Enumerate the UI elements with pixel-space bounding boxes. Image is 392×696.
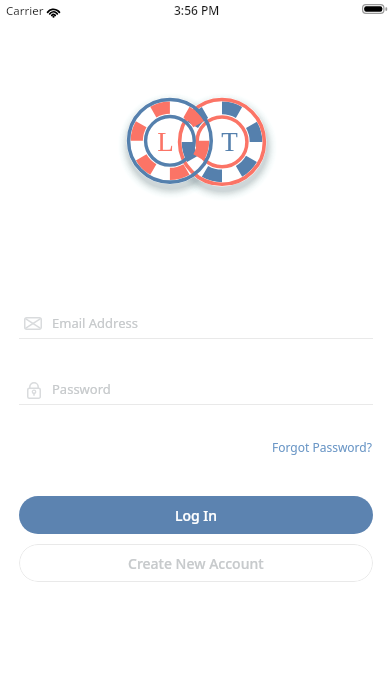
staticText: Carrier bbox=[6, 3, 44, 19]
button[interactable]: Create New Account bbox=[19, 544, 373, 582]
button[interactable]: Forgot Password? bbox=[264, 433, 380, 461]
staticText: Password bbox=[52, 380, 111, 398]
staticText: 3:56 PM bbox=[174, 2, 220, 18]
staticText: T bbox=[221, 127, 238, 157]
staticText: Forgot Password? bbox=[272, 439, 372, 455]
staticText: L bbox=[157, 127, 174, 157]
staticText: Create New Account bbox=[128, 554, 264, 573]
staticText: Log In bbox=[175, 506, 218, 525]
button[interactable]: Log In bbox=[19, 496, 373, 534]
staticText: Email Address bbox=[52, 314, 138, 332]
